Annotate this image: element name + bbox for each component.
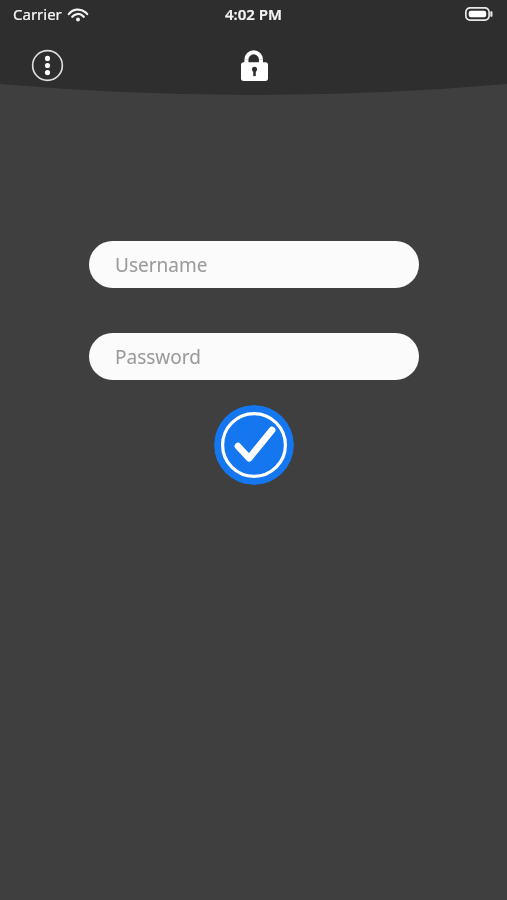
staticText: 4:02 PM bbox=[225, 4, 282, 24]
button[interactable]: Lock bbox=[231, 41, 277, 87]
staticText: Username bbox=[115, 252, 208, 278]
button[interactable]: Username bbox=[89, 241, 419, 288]
staticText: Carrier bbox=[13, 4, 62, 24]
button[interactable]: More options bbox=[25, 43, 69, 87]
button[interactable]: Password bbox=[89, 333, 419, 380]
staticText: Password bbox=[115, 344, 201, 370]
button[interactable]: Submit bbox=[214, 405, 294, 485]
